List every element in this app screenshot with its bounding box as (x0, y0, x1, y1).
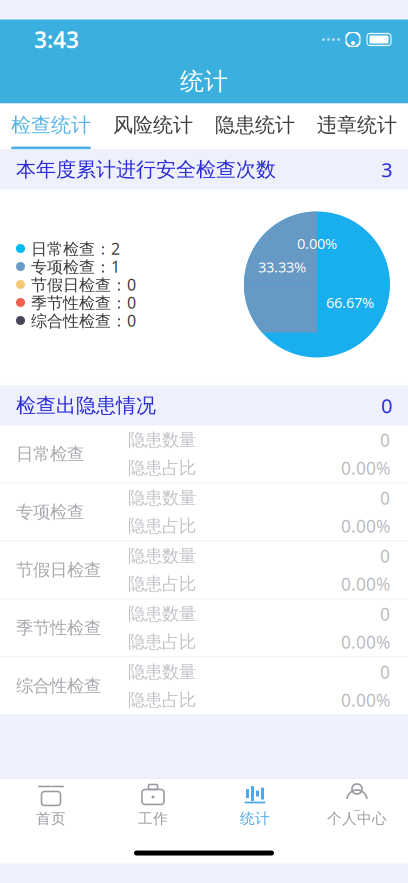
staticText: 0.00% (341, 688, 390, 711)
staticText: 违章统计 (317, 113, 397, 137)
button[interactable]: 工作 (102, 780, 204, 830)
staticText: 综合性检查 (16, 675, 101, 697)
staticText: 隐患数量 (128, 661, 196, 683)
staticText: 33.33% (258, 257, 306, 276)
staticText: 日常检查 (16, 443, 84, 465)
button[interactable]: 隐患统计 (204, 103, 306, 149)
staticText: 本年度累计进行安全检查次数 (16, 157, 276, 182)
staticText: 66.67% (326, 292, 374, 312)
staticText: 节假日检查 (16, 559, 101, 581)
staticText: 专项检查：1 (31, 256, 120, 277)
staticText: 首页 (36, 809, 66, 827)
staticText: 0.00% (341, 630, 390, 653)
staticText: 0.00% (341, 514, 390, 537)
staticText: 0.00% (341, 572, 390, 595)
staticText: 检查统计 (11, 113, 91, 137)
staticText: 0 (380, 544, 390, 567)
staticText: 3 (381, 156, 392, 183)
staticText: 0 (381, 392, 392, 419)
staticText: 综合性检查：0 (31, 310, 136, 331)
staticText: 0 (380, 428, 390, 451)
staticText: 隐患占比 (128, 689, 196, 711)
staticText: 工作 (138, 809, 168, 827)
staticText: 节假日检查：0 (31, 274, 136, 295)
button[interactable]: 首页 (0, 780, 102, 830)
staticText: 3:43 (34, 24, 79, 54)
staticText: 季节性检查 (16, 617, 101, 639)
staticText: 专项检查 (16, 501, 84, 523)
button[interactable]: 违章统计 (306, 103, 408, 149)
staticText: 隐患占比 (128, 631, 196, 653)
staticText: 统计 (180, 67, 228, 96)
staticText: 隐患占比 (128, 457, 196, 479)
button[interactable]: 检查统计 (0, 103, 102, 149)
staticText: 0 (380, 602, 390, 625)
staticText: 隐患数量 (128, 487, 196, 509)
staticText: 季节性检查：0 (31, 292, 136, 313)
staticText: 隐患数量 (128, 603, 196, 625)
staticText: 个人中心 (327, 809, 387, 827)
staticText: 0.00% (341, 456, 390, 479)
staticText: 0 (380, 486, 390, 509)
staticText: 0 (380, 660, 390, 683)
staticText: 隐患数量 (128, 429, 196, 451)
button[interactable]: 个人中心 (306, 780, 408, 830)
staticText: 隐患数量 (128, 545, 196, 567)
staticText: 统计 (240, 809, 270, 827)
button[interactable]: 风险统计 (102, 103, 204, 149)
staticText: 风险统计 (113, 113, 193, 137)
staticText: 日常检查：2 (31, 238, 120, 259)
staticText: 隐患占比 (128, 515, 196, 537)
button[interactable]: 统计 (204, 780, 306, 830)
staticText: 检查出隐患情况 (16, 393, 156, 418)
staticText: 隐患统计 (215, 113, 295, 137)
staticText: 隐患占比 (128, 573, 196, 595)
staticText: 0.00% (297, 233, 337, 253)
